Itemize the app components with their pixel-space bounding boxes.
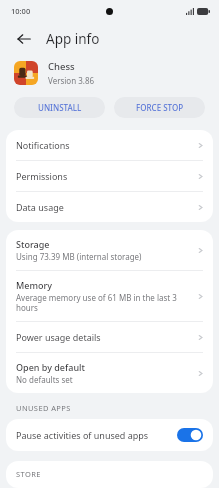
button[interactable]: Notifications <box>6 130 213 161</box>
staticText: Notifications <box>16 139 70 151</box>
button[interactable]: Storage <box>6 230 213 271</box>
staticText: No defaults set <box>16 374 73 385</box>
button[interactable]: Open by default <box>6 353 213 393</box>
staticText: Pause activities of unused apps <box>16 429 171 441</box>
button[interactable]: Memory <box>6 271 213 322</box>
staticText: Storage <box>16 238 50 250</box>
button[interactable]: Back <box>10 25 38 53</box>
staticText: Power usage details <box>16 331 101 343</box>
button[interactable]: Pause activities of unused apps <box>6 419 213 451</box>
staticText: UNINSTALL <box>38 102 82 113</box>
staticText: App info <box>46 30 100 48</box>
button[interactable]: UNINSTALL <box>14 97 105 118</box>
staticText: Average memory use of 61 MB in the last … <box>16 292 190 313</box>
staticText: FORCE STOP <box>136 102 184 113</box>
button[interactable]: FORCE STOP <box>114 97 205 118</box>
staticText: UNUSED APPS <box>16 403 71 413</box>
button[interactable]: Data usage <box>6 192 213 222</box>
staticText: Version 3.86 <box>48 75 95 86</box>
staticText: Memory <box>16 279 53 291</box>
staticText: Using 73.39 MB (internal storage) <box>16 251 142 262</box>
button[interactable]: Power usage details <box>6 322 213 353</box>
staticText: Chess <box>48 60 75 73</box>
staticText: Permissions <box>16 170 68 182</box>
button[interactable]: Permissions <box>6 161 213 192</box>
staticText: STORE <box>16 469 41 479</box>
staticText: 10:00 <box>11 6 31 16</box>
staticText: Data usage <box>16 201 64 213</box>
staticText: Open by default <box>16 361 85 373</box>
